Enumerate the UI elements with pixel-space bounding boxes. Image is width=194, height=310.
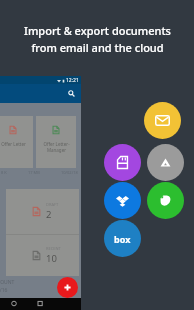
staticText: box [114, 233, 131, 245]
staticText: 17 MB [28, 170, 40, 175]
staticText: 2 [46, 208, 52, 221]
staticText: 12:21 [66, 77, 79, 84]
button[interactable]: Email [144, 102, 181, 139]
button[interactable]: Search [66, 88, 77, 99]
staticText: 0/16 [0, 287, 8, 294]
staticText: 10/02/18 [61, 170, 78, 175]
staticText: Offer Letter [1, 141, 26, 147]
staticText: 10 [46, 252, 57, 265]
staticText: Offer Letter- Manager [43, 141, 70, 153]
staticText: Import & export documents [24, 23, 171, 38]
button[interactable]: Device storage [104, 144, 141, 181]
staticText: 8 K [1, 170, 7, 175]
staticText: RECENT [46, 246, 61, 251]
button[interactable]: Offer Letter [0, 116, 33, 168]
button[interactable]: Evernote [147, 182, 184, 219]
button[interactable]: Google Drive [147, 144, 184, 181]
staticText: from email and the cloud [31, 40, 164, 55]
button[interactable]: Add [57, 277, 78, 298]
button[interactable]: Box [104, 220, 141, 257]
button[interactable]: Dropbox [104, 182, 141, 219]
staticText: ACCOUNT [0, 279, 15, 286]
staticText: DRAFT [46, 202, 59, 207]
button[interactable]: Offer Letter- Manager [36, 116, 76, 168]
